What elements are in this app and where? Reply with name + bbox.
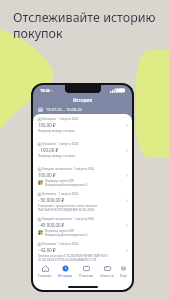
staticText: 100,00 ₽ — [38, 122, 56, 128]
staticText: › — [126, 221, 128, 229]
button[interactable]: Оплачено · 1 августа 2024 — [33, 139, 132, 164]
button[interactable]: Оплачено · 1 августа 2024 — [33, 114, 132, 139]
staticText: Перевод через СБП Владимир Александрович… — [45, 229, 89, 237]
staticText: Перевод между счетами — [38, 154, 75, 158]
button[interactable]: 10.07.22 – 15.08.22 — [33, 104, 132, 114]
staticText: › — [126, 246, 128, 254]
button[interactable]: Платежи — [78, 263, 95, 278]
staticText: - 45 000,00 ₽ — [38, 222, 65, 228]
staticText: Главная — [38, 273, 52, 278]
staticText: Перевод между счетами — [38, 129, 75, 133]
staticText: › — [126, 121, 128, 129]
staticText: Отслеживайте историю покупок — [13, 9, 156, 41]
staticText: Оплачено · 1 августа 2024 — [42, 117, 79, 121]
staticText: 100,00 ₽ — [38, 172, 56, 178]
staticText: › — [126, 146, 128, 154]
staticText: › — [126, 171, 128, 179]
button[interactable]: Ожидает зачисления · 1 августа 2024 — [33, 214, 132, 239]
staticText: Списание с процентного счёта клиента ПАО… — [38, 204, 98, 212]
staticText: - 42,00 ₽ — [38, 247, 56, 253]
staticText: 18:24 — [40, 88, 50, 93]
staticText: Платежи — [79, 273, 94, 278]
staticText: Перевод через СБП Владимир Александрович… — [45, 179, 89, 187]
staticText: Ещё — [120, 273, 127, 278]
staticText: Оплачено · 1 августа 2024 — [42, 242, 79, 246]
staticText: Новости — [100, 273, 114, 278]
staticText: › — [126, 196, 128, 204]
staticText: - 50 000,00 ₽ — [38, 197, 65, 203]
staticText: Оплачено · 1 августа 2024 — [42, 142, 79, 146]
staticText: Оплачено · 1 августа 2024 — [42, 192, 79, 196]
button[interactable]: Главная — [37, 263, 53, 278]
staticText: 10.07.22 – 15.08.22 — [46, 107, 82, 112]
staticText: Ожидает зачисления · 1 августа 2024 — [42, 217, 94, 221]
button[interactable]: Ожидает зачисления · 1 августа 2024 — [33, 164, 132, 189]
staticText: История — [58, 273, 72, 278]
staticText: История — [73, 97, 93, 103]
button[interactable]: Новости — [99, 263, 115, 278]
staticText: Ожидает зачисления · 1 августа 2024 — [42, 167, 94, 171]
staticText: - 100,00 ₽ — [38, 147, 58, 153]
button[interactable]: Оплачено · 1 августа 2024 — [33, 189, 132, 214]
staticText: Оплата за услуги СТЦ ВЫПОЛНЕНИЕ ТАЙНОГО … — [38, 254, 108, 262]
button[interactable]: История — [57, 263, 73, 278]
button[interactable]: Ещё — [119, 263, 128, 278]
button[interactable]: Оплачено · 1 августа 2024 — [33, 239, 132, 263]
